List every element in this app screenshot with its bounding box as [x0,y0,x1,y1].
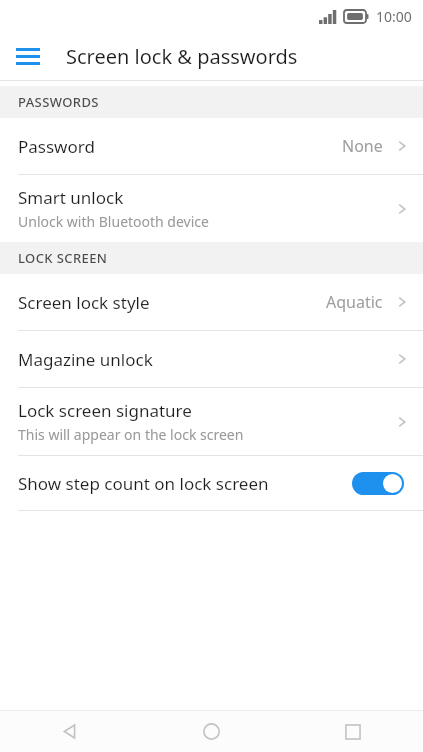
staticText: Show step count on lock screen [18,472,352,495]
button[interactable]: Show step count on lock screen toggle [352,472,404,495]
staticText: Screen lock & passwords [66,43,298,70]
staticText: Smart unlock [18,186,124,209]
staticText: Unlock with Bluetooth device [18,212,209,231]
staticText: Magazine unlock [18,348,153,371]
staticText: 10:00 [376,7,412,26]
button[interactable]: Smart unlock [0,175,423,242]
button[interactable]: Menu [10,38,46,74]
button[interactable]: Home [141,711,282,752]
staticText: Password [18,135,95,158]
staticText: None [342,135,383,157]
staticText: Lock screen signature [18,399,192,422]
button[interactable]: Password [0,118,423,174]
staticText: LOCK SCREEN [18,249,108,267]
button[interactable]: Recent apps [282,711,423,752]
staticText: Aquatic [326,291,383,313]
button[interactable]: Screen lock style [0,274,423,330]
staticText: PASSWORDS [18,93,99,111]
button[interactable]: Lock screen signature [0,388,423,455]
staticText: This will appear on the lock screen [18,425,244,444]
button[interactable]: Back [0,711,141,752]
button[interactable]: Magazine unlock [0,331,423,387]
staticText: Screen lock style [18,291,150,314]
button[interactable]: Show step count on lock screen [0,456,423,510]
